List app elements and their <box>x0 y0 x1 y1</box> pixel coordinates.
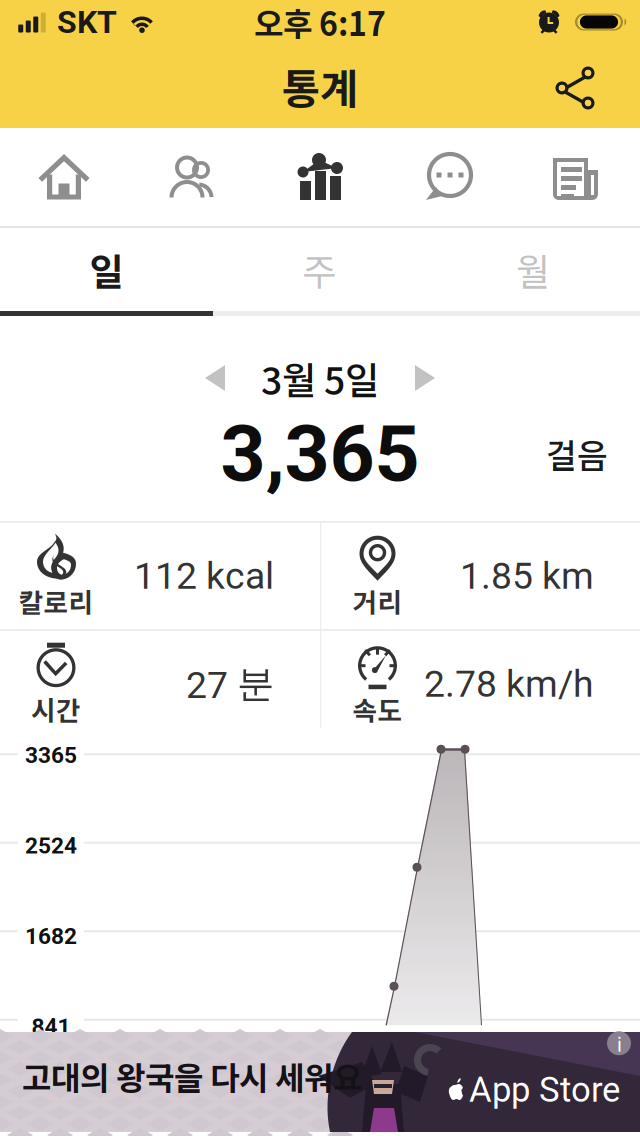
staticText: 841 <box>31 1013 70 1040</box>
staticText: 거리 <box>352 582 402 620</box>
staticText: 1.85 km <box>460 554 594 598</box>
button[interactable]: Friends <box>128 128 256 226</box>
button[interactable]: 월 <box>426 228 640 311</box>
staticText: 3365 <box>25 742 77 769</box>
staticText: 일 <box>89 242 123 297</box>
staticText: 주 <box>302 242 336 297</box>
staticText: 걸음 <box>546 429 608 478</box>
button[interactable]: Share <box>538 48 614 124</box>
staticText: 3월 5일 <box>261 351 379 405</box>
staticText: App Store <box>469 1070 620 1110</box>
button[interactable]: Next day <box>395 352 455 404</box>
staticText: 1682 <box>25 923 77 950</box>
staticText: 속도 <box>352 690 402 728</box>
button[interactable]: Previous day <box>185 352 245 404</box>
staticText: 2524 <box>25 832 77 859</box>
staticText: 3,365 <box>220 407 419 500</box>
staticText: SKT <box>57 3 117 41</box>
staticText: 칼로리 <box>18 582 93 620</box>
button[interactable]: News <box>512 128 640 226</box>
staticText: 112 kcal <box>134 554 274 598</box>
staticText: 2.78 km/h <box>424 662 594 706</box>
button[interactable]: 주 <box>213 228 426 311</box>
staticText: 월 <box>516 242 550 297</box>
button[interactable]: Statistics <box>256 128 384 226</box>
button[interactable]: 일 <box>0 228 213 311</box>
staticText: 27 분 <box>186 660 274 707</box>
button[interactable]: Chat <box>384 128 512 226</box>
staticText: 고대의 왕국을 다시 세워요 <box>22 1053 362 1099</box>
staticText: i <box>617 1033 622 1057</box>
staticText: 통계 <box>282 56 358 116</box>
button[interactable]: Advertisement: 고대의 왕국을 다시 세워요, App Store <box>0 1036 640 1136</box>
staticText: 오후 6:17 <box>254 0 386 45</box>
button[interactable]: Home <box>0 128 128 226</box>
staticText: 시간 <box>31 690 81 728</box>
